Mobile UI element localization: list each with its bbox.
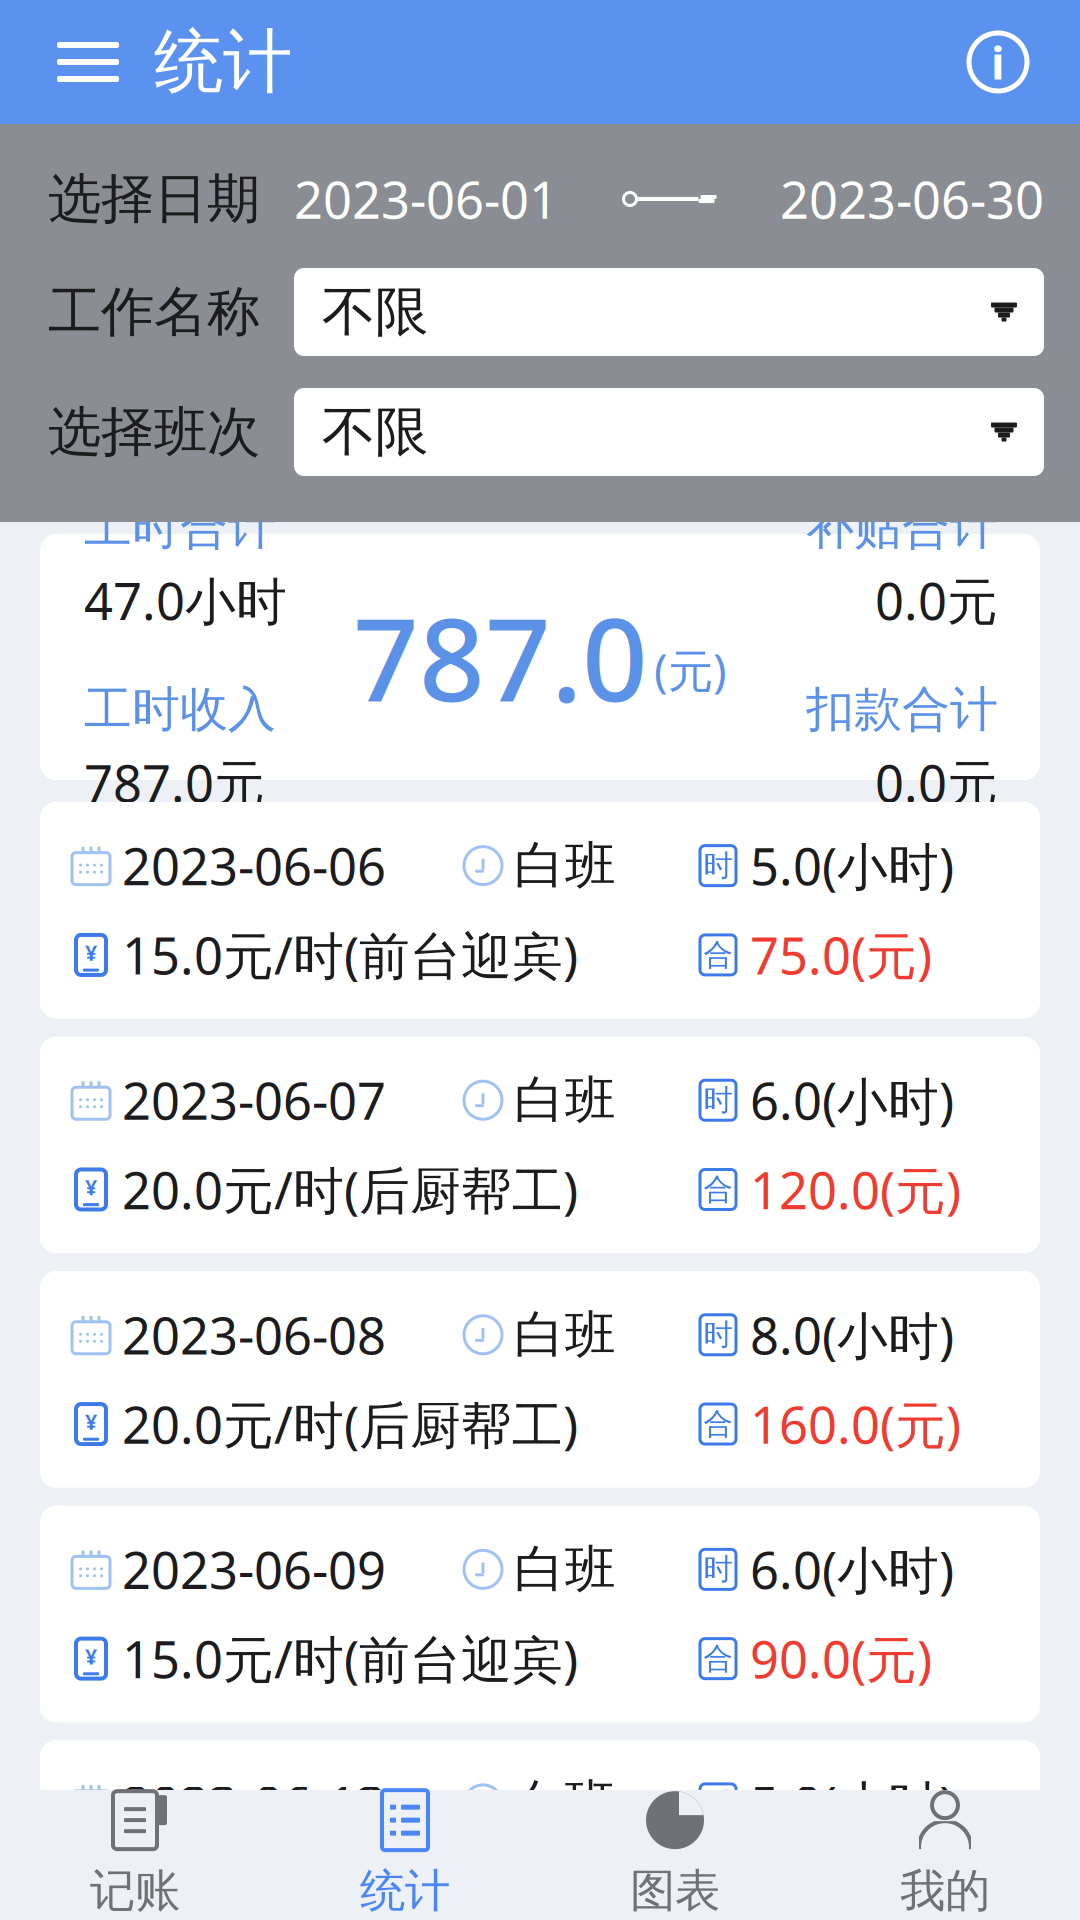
staticText: 选择班次	[48, 399, 260, 465]
staticText: 图表	[630, 1863, 720, 1919]
staticText: (元)	[654, 640, 727, 700]
button[interactable]: 2023-06-07	[40, 1037, 1040, 1253]
button[interactable]: 我的	[810, 1775, 1080, 1920]
staticText: 时	[703, 1786, 732, 1822]
staticText: 0.0元	[875, 749, 998, 816]
staticText: 6.0(小时)	[750, 1536, 954, 1603]
staticText: 15.0元/时(卫生打扫)	[122, 1860, 578, 1920]
staticText: ¥	[85, 1173, 97, 1201]
staticText: 787.0	[353, 581, 648, 733]
button[interactable]: Menu	[40, 14, 136, 110]
button[interactable]: 统计	[270, 1775, 540, 1920]
staticText: 统计	[360, 1863, 450, 1919]
staticText: 合	[703, 1406, 732, 1442]
button[interactable]: 2023-06-01	[294, 164, 1044, 234]
staticText: 选择日期	[48, 166, 260, 232]
staticText: 787.0元	[84, 749, 265, 816]
staticText: 5.0(小时)	[750, 1770, 954, 1838]
staticText: 工时收入	[84, 680, 276, 739]
staticText: 20.0元/时(后厨帮工)	[122, 1390, 578, 1458]
button[interactable]: 2023-06-13	[40, 1740, 1040, 1920]
staticText: ¥	[85, 1642, 97, 1670]
staticText: 0.0元	[875, 567, 998, 634]
staticText: 2023-06-01	[294, 165, 558, 233]
staticText: 2023-06-30	[780, 165, 1044, 233]
button[interactable]: 2023-06-08	[40, 1271, 1040, 1488]
staticText: 2023-06-08	[122, 1301, 386, 1368]
staticText: 120.0(元)	[750, 1156, 961, 1223]
staticText: 白班	[514, 834, 616, 897]
button[interactable]: 2023-06-09	[40, 1506, 1040, 1722]
staticText: 白班	[514, 1069, 616, 1131]
staticText: 2023-06-13	[122, 1770, 386, 1838]
staticText: 75.0(元)	[750, 1860, 932, 1920]
staticText: ¥	[85, 1407, 97, 1436]
button[interactable]: 不限	[294, 388, 1044, 476]
staticText: 2023-06-06	[122, 832, 386, 899]
staticText: 160.0(元)	[750, 1390, 961, 1458]
staticText: 我的	[900, 1863, 990, 1919]
staticText: 47.0小时	[84, 567, 287, 634]
button[interactable]: 不限	[294, 268, 1044, 356]
staticText: 记账	[90, 1863, 180, 1919]
staticText: 时	[703, 848, 732, 884]
staticText: 合	[703, 1171, 732, 1207]
staticText: 20.0元/时(后厨帮工)	[122, 1156, 578, 1223]
staticText: 扣款合计	[806, 680, 998, 739]
staticText: 6.0(小时)	[750, 1067, 954, 1134]
staticText: 2023-06-07	[122, 1067, 386, 1134]
staticText: 5.0(小时)	[750, 832, 954, 899]
staticText: 时	[703, 1317, 732, 1353]
staticText: 白班	[514, 1773, 616, 1835]
staticText: 90.0(元)	[750, 1625, 932, 1692]
staticText: 补贴合计	[806, 498, 998, 557]
staticText: 8.0(小时)	[750, 1301, 954, 1368]
staticText: 不限	[322, 399, 428, 465]
staticText: 合	[703, 1641, 732, 1677]
button[interactable]: 2023-06-06	[40, 802, 1040, 1019]
staticText: 时	[703, 1082, 732, 1118]
staticText: 15.0元/时(前台迎宾)	[122, 1625, 578, 1692]
button[interactable]: Information	[952, 16, 1044, 108]
staticText: i	[991, 32, 1005, 92]
staticText: ¥	[85, 938, 97, 967]
staticText: 工时合计	[84, 498, 276, 557]
staticText: 不限	[322, 279, 428, 345]
staticText: 合	[703, 1875, 732, 1911]
staticText: 75.0(元)	[750, 921, 932, 989]
staticText: 白班	[514, 1304, 616, 1366]
staticText: 统计	[154, 19, 292, 105]
staticText: 工作名称	[48, 279, 260, 345]
staticText: 2023-06-09	[122, 1536, 386, 1603]
button[interactable]: 图表	[540, 1775, 810, 1920]
staticText: 时	[703, 1551, 732, 1587]
staticText: ¥	[85, 1876, 97, 1905]
staticText: 合	[703, 937, 732, 973]
button[interactable]: 记账	[0, 1775, 270, 1920]
staticText: 15.0元/时(前台迎宾)	[122, 921, 578, 989]
staticText: 白班	[514, 1538, 616, 1600]
